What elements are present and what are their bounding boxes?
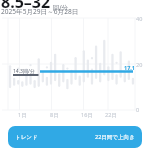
staticText: 8日 xyxy=(50,111,59,119)
staticText: 1日 xyxy=(18,111,27,119)
staticText: 2025年5月29日～6月28日 xyxy=(1,7,79,16)
staticText: 8.5–32 xyxy=(1,0,51,13)
staticText: 40 xyxy=(136,15,143,22)
staticText: トレンド xyxy=(15,134,38,141)
staticText: 0 xyxy=(136,106,140,113)
button[interactable]: トレンド xyxy=(8,126,142,148)
staticText: 14.3回/分 xyxy=(13,68,35,75)
staticText: 22日間で上向き xyxy=(95,133,135,141)
staticText: 22日 xyxy=(105,111,117,119)
staticText: 20 xyxy=(136,61,143,68)
staticText: 回/分 xyxy=(51,3,69,12)
staticText: 16日 xyxy=(81,111,93,119)
staticText: 17.1 xyxy=(124,64,135,71)
